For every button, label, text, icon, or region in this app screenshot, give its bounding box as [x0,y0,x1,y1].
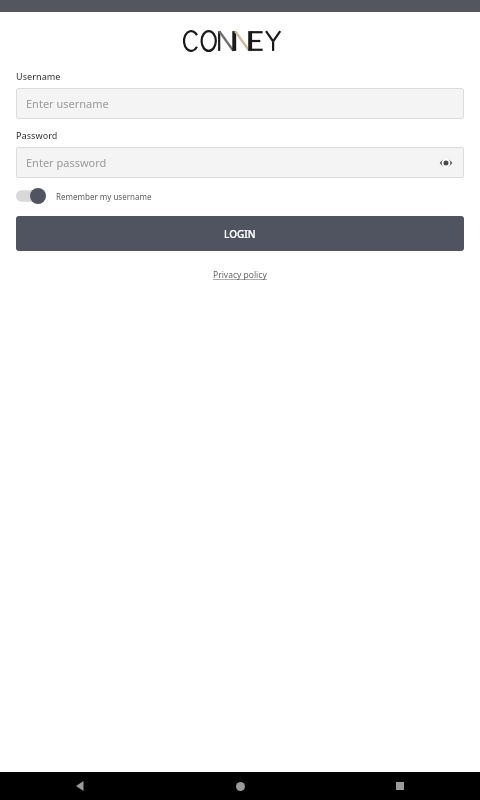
staticText: Remember my username [56,191,152,202]
button[interactable]: Back [0,772,160,800]
button[interactable]: Remember my username toggle [16,188,46,204]
button[interactable]: Recent apps [320,772,480,800]
button[interactable]: LOGIN [16,216,464,251]
staticText: Username [16,70,61,82]
staticText: Enter username [26,96,109,111]
button[interactable]: Enter username [16,88,464,119]
staticText: LOGIN [224,227,256,241]
button[interactable]: Show password [436,153,456,173]
button[interactable]: Enter password [16,147,464,178]
button[interactable]: Home [160,772,320,800]
staticText: Password [16,129,58,141]
staticText: Enter password [26,155,107,170]
button[interactable]: Privacy policy [209,265,271,285]
button[interactable]: Remember my username toggle [16,188,152,204]
